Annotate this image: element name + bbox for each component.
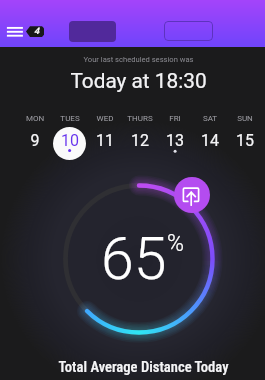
button[interactable]: TUES 10	[52, 112, 87, 156]
staticText: Total Average Distance Today	[11, 358, 265, 380]
button[interactable]: Menu	[6, 25, 24, 39]
staticText: 14	[188, 131, 232, 150]
button[interactable]: THURS 12	[122, 112, 157, 156]
staticText: Your last scheduled session was	[6, 55, 265, 380]
staticText: WED	[83, 114, 127, 123]
staticText: 65	[101, 224, 167, 293]
button[interactable]: Schedule tab	[69, 21, 116, 42]
staticText: THURS	[118, 114, 162, 123]
staticText: %	[167, 230, 185, 257]
staticText: TUES	[48, 114, 92, 123]
button[interactable]: SUN 15	[228, 112, 263, 156]
button[interactable]: SAT 14	[193, 112, 228, 156]
staticText: 9	[13, 131, 57, 150]
staticText: 15	[223, 131, 265, 150]
staticText: SAT	[188, 114, 232, 123]
button[interactable]: FRI 13	[158, 112, 193, 156]
staticText: Today at 18:30	[6, 69, 265, 380]
staticText: FRI	[153, 114, 197, 123]
staticText: 12	[118, 131, 162, 150]
button[interactable]: History tab	[164, 21, 213, 41]
staticText: MON	[13, 114, 57, 123]
button[interactable]: MON 9	[17, 112, 52, 156]
staticText: 4	[34, 26, 40, 37]
staticText: SUN	[223, 114, 265, 123]
staticText: 11	[83, 131, 127, 150]
button[interactable]: Notifications, 4 new	[26, 26, 44, 37]
staticText: 13	[153, 131, 197, 150]
button[interactable]: WED 11	[87, 112, 122, 156]
staticText: 10	[48, 131, 92, 150]
button[interactable]: Share progress	[174, 177, 210, 213]
